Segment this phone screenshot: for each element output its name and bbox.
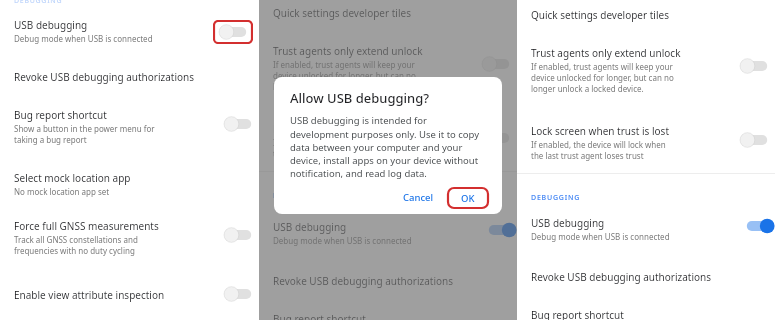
button[interactable]: Select mock location app [0, 171, 259, 197]
staticText: DEBUGGING [14, 0, 63, 6]
staticText: Enable view attribute inspection [14, 288, 165, 302]
button[interactable]: Lock screen when trust is lost [481, 130, 511, 146]
button[interactable]: Lock screen when trust is lost [739, 132, 769, 148]
button[interactable]: Bug report shortcut [259, 312, 517, 320]
staticText: Bug report shortcut [14, 108, 107, 122]
button[interactable]: Trust agents only extend unlock [517, 46, 775, 94]
staticText: USB debugging is intended for developmen… [290, 114, 488, 179]
button[interactable]: USB debugging [745, 218, 775, 234]
staticText: Debug mode when USB is connected [273, 235, 412, 246]
staticText: If enabled, the device will lock when th… [273, 137, 408, 159]
button[interactable]: USB debugging [0, 18, 259, 44]
staticText: Track all GNSS constellations and freque… [14, 234, 138, 256]
button[interactable]: Bug report shortcut [517, 308, 775, 320]
staticText: Revoke USB debugging authorizations [531, 270, 712, 284]
staticText: DEBUGGING [273, 191, 323, 201]
staticText: DEBUGGING [531, 193, 581, 203]
staticText: Show a button in the power menu for taki… [14, 123, 155, 145]
button[interactable]: Force full GNSS measurements [223, 227, 253, 243]
button[interactable]: Lock screen when trust is lost [259, 122, 517, 159]
staticText: Select mock location app [14, 171, 131, 185]
staticText: Quick settings developer tiles [531, 8, 669, 22]
staticText: USB debugging [14, 18, 88, 32]
button[interactable]: USB debugging [517, 216, 775, 242]
staticText: Revoke USB debugging authorizations [14, 70, 195, 84]
staticText: Trust agents only extend unlock [531, 46, 681, 60]
staticText: Debug mode when USB is connected [14, 33, 153, 44]
button[interactable]: USB debugging [487, 222, 517, 238]
staticText: Cancel [403, 191, 434, 204]
button[interactable]: Force full GNSS measurements [0, 219, 259, 256]
staticText: Bug report shortcut [273, 312, 366, 320]
staticText: USB debugging [531, 216, 605, 230]
button[interactable]: Enable view attribute inspection [223, 286, 253, 302]
button[interactable]: Quick settings developer tiles [259, 6, 517, 20]
staticText: Bug report shortcut [531, 308, 624, 320]
staticText: Lock screen when trust is lost [273, 122, 411, 136]
staticText: If enabled, trust agents will keep your … [273, 59, 416, 92]
staticText: Force full GNSS measurements [14, 219, 159, 233]
staticText: USB debugging [273, 220, 347, 234]
button[interactable]: Trust agents only extend unlock [739, 58, 769, 74]
staticText: If enabled, the device will lock when th… [531, 139, 666, 161]
button[interactable]: USB debugging [259, 220, 517, 246]
button[interactable]: Revoke USB debugging authorizations [259, 274, 517, 288]
staticText: Revoke USB debugging authorizations [273, 274, 454, 288]
button[interactable]: Bug report shortcut [223, 116, 253, 132]
staticText: If enabled, trust agents will keep your … [531, 61, 674, 94]
button[interactable]: Cancel [397, 187, 440, 208]
button[interactable]: Quick settings developer tiles [517, 8, 775, 22]
button[interactable]: USB debugging [218, 24, 248, 40]
staticText: Quick settings developer tiles [273, 6, 411, 20]
button[interactable]: Revoke USB debugging authorizations [0, 70, 259, 84]
staticText: Lock screen when trust is lost [531, 124, 669, 138]
staticText: No mock location app set [14, 186, 110, 197]
button[interactable]: OK [453, 189, 483, 208]
staticText: Allow USB debugging? [290, 89, 430, 107]
button[interactable]: Bug report shortcut [0, 108, 259, 145]
staticText: Trust agents only extend unlock [273, 44, 423, 58]
staticText: OK [461, 192, 475, 205]
button[interactable]: Lock screen when trust is lost [517, 124, 775, 161]
button[interactable]: Trust agents only extend unlock [259, 44, 517, 92]
button[interactable]: Revoke USB debugging authorizations [517, 270, 775, 284]
button[interactable]: Trust agents only extend unlock [481, 56, 511, 72]
button[interactable]: Enable view attribute inspection [0, 288, 259, 304]
staticText: Debug mode when USB is connected [531, 231, 670, 242]
